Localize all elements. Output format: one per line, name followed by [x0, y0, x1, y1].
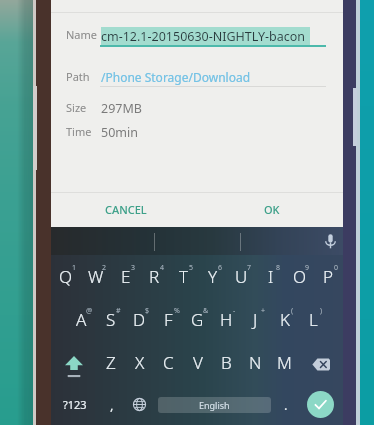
staticText: N	[249, 351, 262, 374]
staticText: Time	[66, 124, 92, 139]
staticText: C	[163, 351, 174, 374]
button[interactable]: ?123	[51, 384, 99, 425]
button[interactable]: W	[81, 255, 111, 298]
button[interactable]: English	[154, 384, 275, 425]
staticText: Size	[66, 100, 87, 115]
staticText: %	[174, 306, 180, 316]
staticText: 297MB	[101, 100, 142, 117]
button[interactable]: ,	[99, 384, 124, 425]
button[interactable]: Change language	[124, 384, 154, 425]
staticText: U	[235, 265, 248, 288]
staticText: 2	[102, 263, 107, 273]
staticText: J	[253, 308, 258, 331]
staticText: #	[116, 306, 121, 316]
staticText: $	[145, 306, 150, 316]
staticText: +	[261, 306, 266, 316]
button[interactable]: .	[275, 384, 297, 425]
staticText: D	[133, 308, 146, 331]
staticText: 6	[218, 263, 223, 273]
staticText: -	[233, 306, 236, 316]
staticText: &	[203, 306, 209, 316]
staticText: cm-12.1-20150630-NIGHTLY-bacon	[101, 28, 306, 45]
button[interactable]: R	[140, 255, 169, 298]
button[interactable]: K	[270, 298, 299, 341]
button[interactable]: H	[212, 298, 241, 341]
staticText: F	[164, 308, 173, 331]
staticText: W	[88, 265, 104, 288]
staticText: 3	[131, 263, 136, 273]
button[interactable]: Q	[51, 255, 81, 298]
staticText: /Phone Storage/Download	[101, 69, 251, 85]
staticText: Y	[208, 265, 218, 288]
staticText: Name	[66, 27, 98, 42]
staticText: .	[284, 396, 288, 414]
button[interactable]: I	[256, 255, 285, 298]
button[interactable]: Y	[198, 255, 227, 298]
button[interactable]: N	[241, 341, 270, 384]
button[interactable]: O	[285, 255, 314, 298]
staticText: Path	[66, 69, 90, 84]
staticText: @	[86, 306, 93, 316]
staticText: X	[135, 351, 145, 374]
button[interactable]: Enter	[297, 384, 343, 425]
staticText: CANCEL	[105, 202, 147, 217]
button[interactable]: CANCEL	[97, 198, 155, 221]
staticText: English	[199, 399, 230, 411]
staticText: ?123	[63, 397, 87, 412]
button[interactable]: C	[154, 341, 183, 384]
staticText: OK	[264, 202, 280, 217]
staticText: S	[106, 308, 116, 331]
button[interactable]: Z	[96, 341, 125, 384]
button[interactable]: V	[183, 341, 212, 384]
staticText: G	[191, 308, 204, 331]
button[interactable]: G	[183, 298, 212, 341]
staticText: A	[76, 308, 87, 331]
button[interactable]: Backspace	[299, 341, 343, 384]
button[interactable]: E	[111, 255, 140, 298]
staticText: V	[193, 351, 203, 374]
staticText: 1	[72, 263, 77, 273]
staticText: P	[323, 265, 334, 288]
button[interactable]: A	[67, 298, 96, 341]
staticText: B	[221, 351, 232, 374]
button[interactable]: Shift	[51, 341, 96, 384]
staticText: M	[277, 351, 292, 374]
button[interactable]: P	[314, 255, 343, 298]
staticText: )	[320, 306, 323, 316]
staticText: 4	[160, 263, 165, 273]
button[interactable]: T	[169, 255, 198, 298]
staticText: O	[293, 265, 307, 288]
staticText: R	[149, 265, 160, 288]
staticText: Q	[59, 265, 73, 288]
button[interactable]: U	[227, 255, 256, 298]
staticText: T	[179, 265, 189, 288]
button[interactable]: D	[125, 298, 154, 341]
staticText: 0	[334, 263, 339, 273]
staticText: E	[121, 265, 131, 288]
button[interactable]: OK	[256, 198, 288, 221]
staticText: 50min	[101, 124, 138, 141]
staticText: ,	[110, 396, 114, 414]
button[interactable]: J	[241, 298, 270, 341]
staticText: Z	[106, 351, 116, 374]
button[interactable]: Voice input	[313, 227, 347, 255]
button[interactable]: F	[154, 298, 183, 341]
staticText: 9	[305, 263, 310, 273]
staticText: I	[268, 265, 274, 288]
staticText: 7	[247, 263, 252, 273]
staticText: 5	[189, 263, 194, 273]
staticText: L	[309, 308, 318, 331]
button[interactable]: X	[125, 341, 154, 384]
button[interactable]: L	[299, 298, 328, 341]
button[interactable]: B	[212, 341, 241, 384]
staticText: 8	[276, 263, 281, 273]
staticText: K	[280, 308, 290, 331]
staticText: (	[291, 306, 294, 316]
button[interactable]: M	[270, 341, 299, 384]
staticText: H	[220, 308, 233, 331]
button[interactable]: S	[96, 298, 125, 341]
